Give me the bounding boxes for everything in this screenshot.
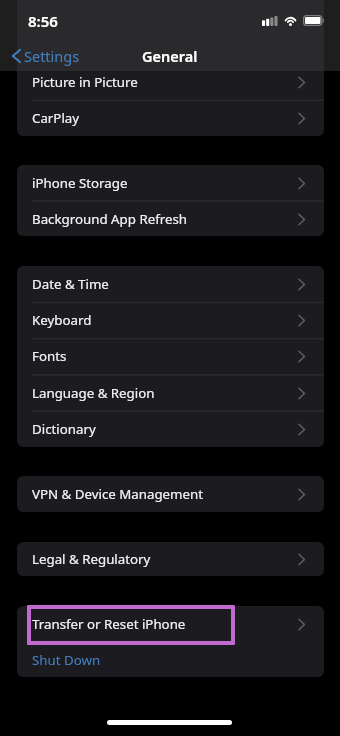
staticText: General	[142, 46, 198, 66]
staticText: Settings	[24, 46, 80, 66]
other: Battery	[303, 15, 324, 26]
staticText: Keyboard	[32, 311, 92, 329]
button[interactable]: Picture in Picture	[17, 64, 324, 100]
staticText: CarPlay	[32, 109, 80, 127]
button[interactable]: Transfer or Reset iPhone	[17, 606, 324, 642]
button[interactable]: CarPlay	[17, 100, 324, 136]
staticText: Dictionary	[32, 420, 96, 438]
button[interactable]: Background App Refresh	[17, 201, 324, 236]
button[interactable]: Shut Down	[17, 642, 324, 677]
staticText: Background App Refresh	[32, 210, 188, 228]
staticText: iPhone Storage	[32, 174, 128, 192]
button[interactable]: VPN & Device Management	[17, 476, 324, 512]
button[interactable]: iPhone Storage	[17, 165, 324, 201]
staticText: Picture in Picture	[32, 73, 138, 91]
button[interactable]: Keyboard	[17, 302, 324, 338]
button[interactable]: Dictionary	[17, 411, 324, 447]
button[interactable]: Legal & Regulatory	[17, 542, 324, 576]
staticText: Legal & Regulatory	[32, 550, 151, 568]
other: Cellular signal	[262, 16, 278, 26]
button[interactable]: Language & Region	[17, 375, 324, 411]
staticText: VPN & Device Management	[32, 485, 204, 503]
staticText: 8:56	[28, 11, 58, 31]
other: Wi-Fi	[284, 15, 297, 26]
staticText: Fonts	[32, 347, 67, 365]
button[interactable]: Settings	[12, 46, 80, 66]
button[interactable]: Date & Time	[17, 266, 324, 302]
staticText: Language & Region	[32, 384, 155, 402]
staticText: Date & Time	[32, 275, 109, 293]
button[interactable]: Fonts	[17, 338, 324, 374]
staticText: Transfer or Reset iPhone	[32, 615, 186, 633]
staticText: Shut Down	[32, 651, 101, 669]
